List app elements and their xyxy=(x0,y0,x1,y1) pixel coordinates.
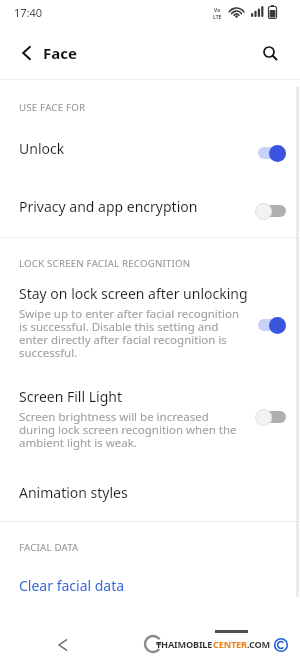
staticText: 17:40 xyxy=(14,5,43,20)
staticText: CENTER xyxy=(213,638,247,651)
staticText: USE FACE FOR xyxy=(19,101,86,114)
button[interactable] xyxy=(255,41,285,65)
button[interactable] xyxy=(0,567,300,607)
button[interactable] xyxy=(0,473,300,515)
staticText: Stay on lock screen after unlocking xyxy=(19,284,248,303)
staticText: .COM xyxy=(247,638,270,651)
staticText: Privacy and app encryption xyxy=(19,197,198,216)
staticText: THAIMOBILE xyxy=(156,638,213,651)
button[interactable] xyxy=(0,130,300,178)
button[interactable] xyxy=(12,42,40,64)
staticText: Animation styles xyxy=(19,483,128,502)
button[interactable] xyxy=(40,630,84,660)
staticText: FACIAL DATA xyxy=(19,541,79,554)
staticText: LTE xyxy=(213,14,222,21)
staticText: Vo xyxy=(214,7,221,14)
staticText: Clear facial data xyxy=(19,576,125,595)
staticText: LOCK SCREEN FACIAL RECOGNITION xyxy=(19,257,191,270)
staticText: Screen brightness will be increased duri… xyxy=(19,409,237,451)
staticText: Face xyxy=(43,43,77,63)
staticText: Swipe up to enter after facial recogniti… xyxy=(19,306,240,361)
button[interactable] xyxy=(0,380,300,458)
button[interactable] xyxy=(0,278,300,368)
staticText: Screen Fill Light xyxy=(19,387,122,406)
staticText: Unlock xyxy=(19,139,65,158)
button[interactable] xyxy=(0,188,300,236)
